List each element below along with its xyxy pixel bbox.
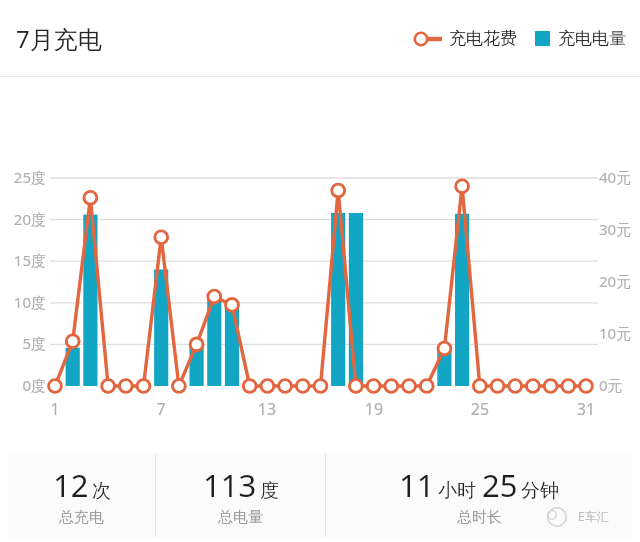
staticText: 31 bbox=[572, 398, 600, 420]
staticText: 12 bbox=[53, 464, 89, 506]
staticText: 充电电量 bbox=[558, 28, 626, 49]
button[interactable]: 12 bbox=[8, 453, 155, 537]
staticText: 25度 bbox=[0, 167, 46, 187]
staticText: 11 bbox=[399, 464, 435, 506]
staticText: 度 bbox=[260, 479, 279, 503]
staticText: 10度 bbox=[0, 292, 46, 312]
staticText: 30元 bbox=[599, 219, 632, 239]
button[interactable]: 113 bbox=[156, 453, 325, 537]
staticText: E车汇 bbox=[578, 508, 609, 524]
button[interactable]: 11 bbox=[326, 453, 632, 537]
staticText: 40元 bbox=[599, 167, 632, 187]
staticText: 7月充电 bbox=[16, 22, 102, 55]
button[interactable]: 充电电量 bbox=[533, 20, 628, 57]
staticText: 分钟 bbox=[521, 479, 559, 503]
staticText: 20度 bbox=[0, 209, 46, 229]
staticText: 25 bbox=[482, 464, 518, 506]
staticText: 7 bbox=[147, 398, 175, 420]
staticText: 总时长 bbox=[457, 508, 502, 527]
staticText: 充电花费 bbox=[449, 28, 517, 49]
staticText: 1 bbox=[41, 398, 69, 420]
button[interactable]: 充电花费 bbox=[410, 20, 519, 57]
staticText: 10元 bbox=[599, 323, 632, 343]
staticText: 5度 bbox=[0, 333, 46, 353]
staticText: 小时 bbox=[438, 479, 476, 503]
staticText: 总充电 bbox=[59, 508, 104, 527]
staticText: 19 bbox=[360, 398, 388, 420]
staticText: 次 bbox=[92, 479, 111, 503]
staticText: 113 bbox=[203, 464, 257, 506]
staticText: 20元 bbox=[599, 271, 632, 291]
other: Logo bbox=[545, 505, 569, 529]
staticText: 13 bbox=[253, 398, 281, 420]
staticText: 0元 bbox=[599, 375, 623, 395]
staticText: 总电量 bbox=[218, 508, 263, 527]
staticText: 25 bbox=[466, 398, 494, 420]
staticText: 0度 bbox=[0, 375, 46, 395]
staticText: 15度 bbox=[0, 250, 46, 270]
